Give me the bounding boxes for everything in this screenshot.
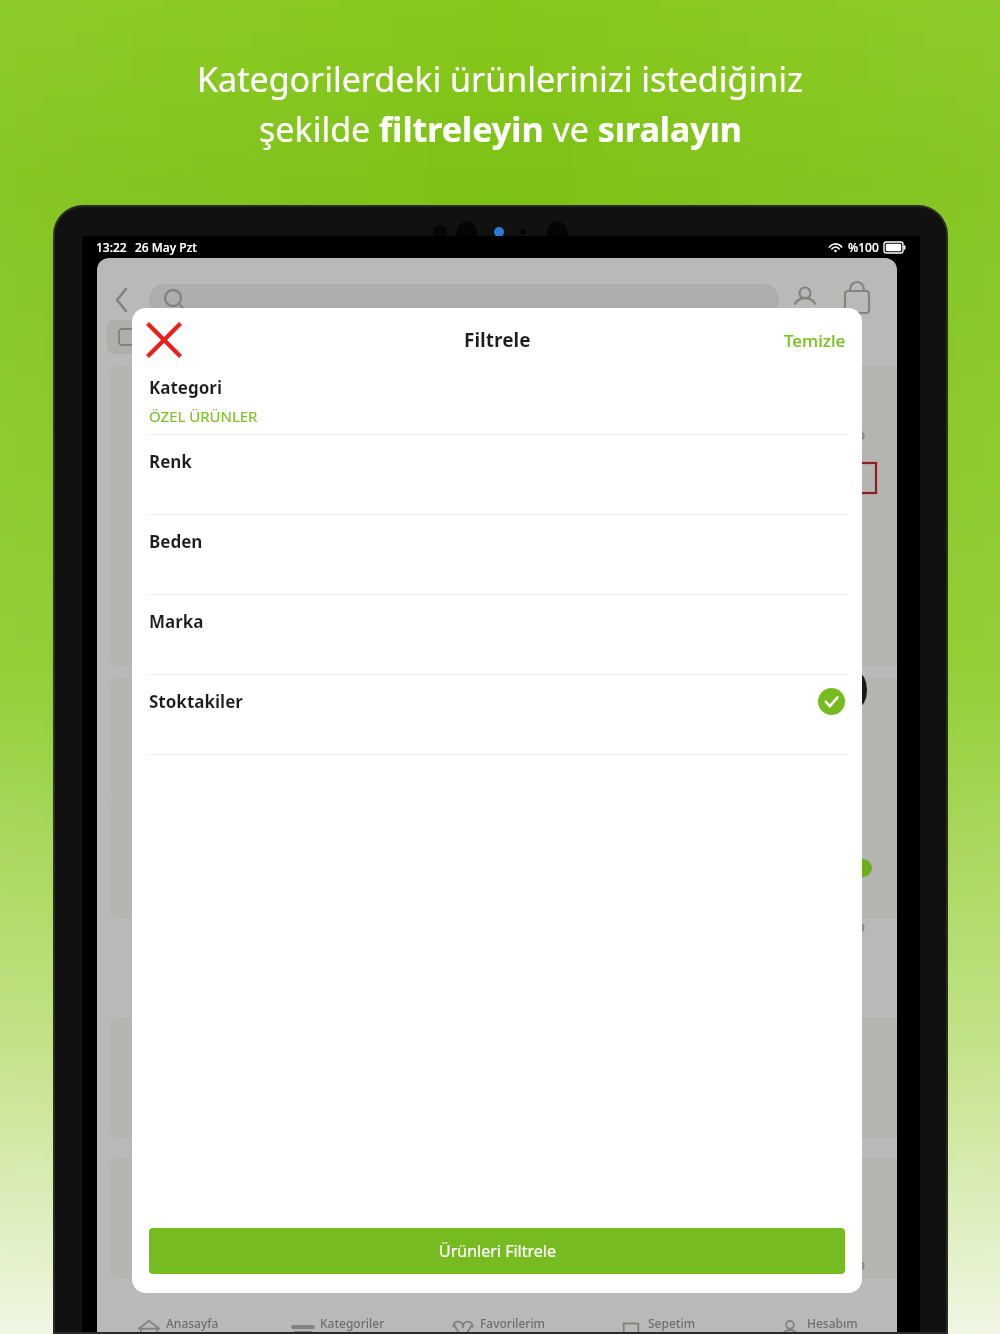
staticText: Kategori — [149, 376, 223, 399]
button[interactable]: Kategori — [132, 372, 862, 434]
staticText: Beden — [149, 530, 203, 553]
button[interactable]: Temizle — [768, 317, 862, 364]
button[interactable]: Sepetim — [577, 1315, 737, 1332]
button[interactable]: Hesabım — [737, 1315, 897, 1332]
button[interactable]: Favorilerim — [417, 1315, 577, 1332]
staticText: Marka — [149, 610, 204, 633]
staticText: ÖZEL ÜRÜNLER — [149, 406, 258, 426]
staticText: Ürünleri Filtrele — [439, 1240, 556, 1262]
staticText: Hesabım — [807, 1315, 858, 1331]
other: Seçili — [818, 688, 845, 715]
staticText: Renk — [149, 450, 192, 473]
button[interactable]: Beden — [132, 515, 862, 594]
button[interactable]: Ürünleri Filtrele — [149, 1228, 845, 1274]
staticText: şekilde filtreleyin ve sıralayın — [259, 106, 742, 152]
staticText: Stoktakiler — [149, 690, 243, 713]
button[interactable]: Renk — [132, 435, 862, 514]
staticText: 26 May Pzt — [135, 239, 197, 255]
staticText: %100 — [848, 239, 879, 255]
button[interactable]: Stoktakiler — [132, 675, 862, 754]
staticText: Sepetim — [648, 1315, 696, 1331]
staticText: Temizle — [784, 329, 846, 352]
button[interactable]: Kategoriler — [257, 1315, 417, 1332]
staticText: Favorilerim — [480, 1315, 545, 1331]
button[interactable]: Anasayfa — [97, 1315, 257, 1332]
staticText: Filtrele — [464, 327, 531, 353]
staticText: Kategorilerdeki ürünlerinizi istediğiniz — [197, 56, 803, 102]
staticText: 13:22 — [96, 239, 127, 255]
button[interactable]: Kapat — [138, 314, 190, 366]
button[interactable]: Marka — [132, 595, 862, 674]
staticText: Kategoriler — [320, 1315, 385, 1331]
staticText: Anasayfa — [166, 1315, 219, 1331]
